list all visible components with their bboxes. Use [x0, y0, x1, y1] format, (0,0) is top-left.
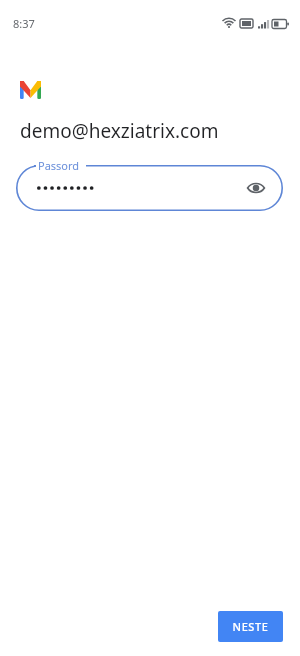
staticText: demo@hexziatrix.com — [20, 118, 219, 144]
button[interactable]: NESTE — [218, 611, 283, 642]
button[interactable]: Vis passord — [243, 175, 269, 201]
staticText: 8:37 — [13, 16, 35, 31]
button[interactable]: Passord — [16, 165, 283, 211]
staticText: NESTE — [232, 619, 269, 634]
staticText: Passord — [38, 158, 80, 173]
